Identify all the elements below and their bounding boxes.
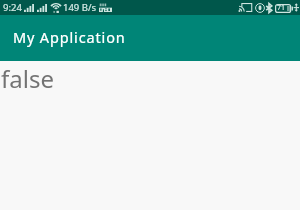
staticText: false: [1, 62, 54, 95]
staticText: 9:24: [3, 1, 22, 14]
staticText: 71: [277, 3, 286, 13]
staticText: My Application: [13, 27, 126, 47]
staticText: 149 B/s: [63, 1, 97, 14]
